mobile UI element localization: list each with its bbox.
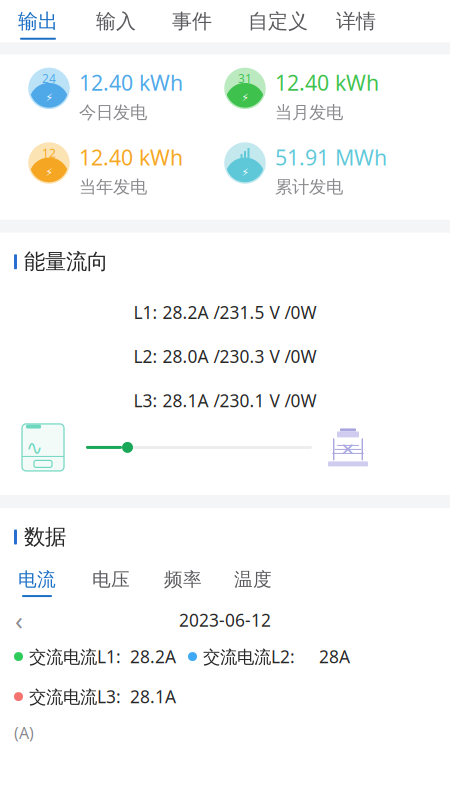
staticText: ⚡︎: [45, 166, 52, 179]
staticText: 今日发电: [79, 102, 147, 123]
staticText: 24: [42, 70, 56, 86]
staticText: 当年发电: [79, 176, 147, 198]
staticText: 事件: [172, 9, 212, 34]
staticText: 12.40 kWh: [275, 68, 379, 97]
button[interactable]: 电压: [90, 568, 132, 597]
button[interactable]: 电流: [16, 568, 58, 597]
button[interactable]: 输入: [94, 9, 138, 40]
staticText: 输出: [18, 9, 58, 34]
staticText: 频率: [164, 568, 202, 591]
staticText: 28.2A: [130, 645, 176, 668]
staticText: 温度: [234, 568, 272, 591]
staticText: 数据: [24, 524, 66, 550]
staticText: 28.1A: [130, 685, 176, 708]
button[interactable]: 12: [29, 143, 225, 198]
staticText: 12.40 kWh: [79, 68, 183, 97]
staticText: ✕: [340, 440, 355, 459]
staticText: 能量流向: [24, 249, 108, 275]
staticText: 输入: [96, 9, 136, 34]
staticText: 31: [238, 70, 252, 86]
staticText: ⚡︎: [241, 166, 248, 179]
button[interactable]: ⚡︎: [225, 143, 421, 198]
staticText: L2: 28.0A /230.3 V /0W: [133, 345, 316, 368]
staticText: 28A: [319, 645, 350, 668]
staticText: 交流电流L3:: [29, 685, 121, 708]
staticText: ‹: [15, 603, 23, 637]
staticText: 2023-06-12: [179, 608, 271, 631]
staticText: (A): [14, 722, 34, 743]
staticText: L3: 28.1A /230.1 V /0W: [133, 389, 316, 412]
staticText: 12.40 kWh: [79, 143, 183, 171]
staticText: ⚡︎: [45, 92, 52, 104]
staticText: 自定义: [248, 9, 308, 34]
button[interactable]: 详情: [334, 9, 378, 40]
staticText: ∿: [26, 437, 43, 459]
button[interactable]: 事件: [170, 9, 214, 40]
staticText: 12: [42, 145, 56, 161]
button[interactable]: 输出: [16, 9, 60, 40]
staticText: L1: 28.2A /231.5 V /0W: [133, 301, 316, 324]
staticText: 交流电流L2:: [203, 645, 295, 668]
staticText: 电流: [18, 568, 56, 591]
button[interactable]: 频率: [162, 568, 204, 597]
staticText: 当月发电: [275, 102, 343, 123]
button[interactable]: 自定义: [246, 9, 310, 40]
button[interactable]: 温度: [232, 568, 274, 597]
staticText: 详情: [336, 9, 376, 34]
staticText: 交流电流L1:: [29, 645, 121, 668]
staticText: 51.91 MWh: [275, 143, 387, 171]
staticText: ⚡︎: [241, 92, 248, 104]
button[interactable]: 31: [225, 68, 421, 123]
button[interactable]: Previous day: [0, 607, 38, 633]
staticText: 电压: [92, 568, 130, 591]
staticText: 累计发电: [275, 176, 343, 198]
button[interactable]: 24: [29, 68, 225, 123]
